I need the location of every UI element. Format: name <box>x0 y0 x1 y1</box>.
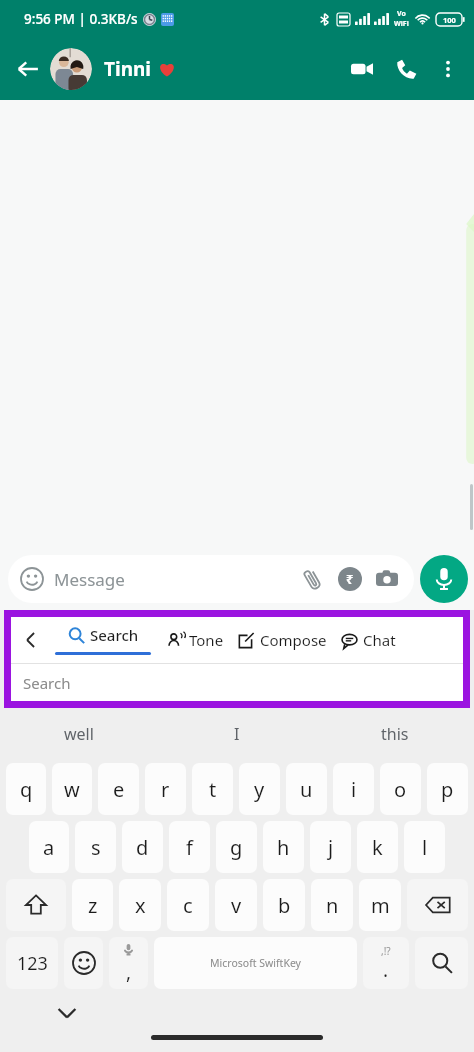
button[interactable]: c <box>167 879 209 931</box>
button[interactable]: t <box>192 763 233 815</box>
staticText: i <box>351 776 357 803</box>
button[interactable]: Microsoft SwiftKey <box>154 937 357 989</box>
staticText: r <box>161 776 170 803</box>
button[interactable]: e <box>98 763 139 815</box>
button[interactable]: well <box>0 708 158 760</box>
button[interactable]: l <box>404 821 445 873</box>
button[interactable]: Punctuation <box>363 937 409 989</box>
button[interactable]: Search <box>51 625 155 655</box>
staticText: q <box>20 776 33 803</box>
staticText: l <box>422 834 428 861</box>
button[interactable]: d <box>122 821 163 873</box>
staticText: n <box>326 892 339 919</box>
staticText: f <box>186 834 193 861</box>
button[interactable]: b <box>263 879 305 931</box>
button[interactable]: Emoji <box>64 937 103 989</box>
staticText: 9:56 PM | 0.3KB/s <box>24 10 138 28</box>
staticText: x <box>135 892 146 919</box>
button[interactable]: Message <box>8 555 414 603</box>
staticText: Tone <box>189 630 224 650</box>
button[interactable]: z <box>72 879 113 931</box>
button[interactable]: Back <box>8 49 48 89</box>
button[interactable]: f <box>169 821 210 873</box>
staticText: Search <box>23 673 71 693</box>
staticText: h <box>277 834 290 861</box>
button[interactable]: Attach <box>296 563 328 595</box>
staticText: s <box>91 834 101 861</box>
staticText: z <box>88 892 98 919</box>
button[interactable]: Tinni <box>50 48 176 90</box>
staticText: b <box>278 892 291 919</box>
button[interactable]: I <box>158 708 316 760</box>
staticText: . <box>383 957 389 983</box>
button[interactable]: m <box>359 879 401 931</box>
button[interactable]: Camera <box>372 564 402 594</box>
button[interactable]: Voice input or comma <box>109 937 148 989</box>
button[interactable]: h <box>263 821 304 873</box>
staticText: c <box>183 892 193 919</box>
staticText: ,!? <box>381 944 391 958</box>
staticText: WiFi <box>394 19 409 29</box>
button[interactable]: a <box>29 821 69 873</box>
button[interactable]: Tone <box>165 630 226 650</box>
staticText: Tinni <box>104 56 152 82</box>
staticText: v <box>231 892 242 919</box>
staticText: j <box>328 834 334 861</box>
button[interactable]: 123 <box>6 937 58 989</box>
button[interactable]: Compose <box>236 630 329 650</box>
staticText: Search <box>90 625 139 645</box>
button[interactable]: p <box>427 763 468 815</box>
button[interactable]: Payment <box>336 565 364 593</box>
staticText: d <box>136 834 149 861</box>
staticText: y <box>254 776 265 803</box>
staticText: u <box>300 776 313 803</box>
button[interactable]: o <box>380 763 421 815</box>
button[interactable]: Video call <box>340 47 384 91</box>
staticText: well <box>64 723 94 745</box>
button[interactable]: Search <box>11 664 463 701</box>
staticText: Vo <box>397 9 406 19</box>
button[interactable]: q <box>6 763 46 815</box>
staticText: , <box>126 959 132 985</box>
staticText: 100 <box>443 15 456 25</box>
staticText: t <box>209 776 217 803</box>
button[interactable]: Hide keyboard <box>52 998 82 1028</box>
button[interactable]: r <box>145 763 186 815</box>
button[interactable]: k <box>357 821 398 873</box>
staticText: e <box>113 776 125 803</box>
button[interactable]: s <box>75 821 116 873</box>
staticText: Compose <box>260 630 327 650</box>
staticText: k <box>372 834 383 861</box>
staticText: Message <box>54 568 125 591</box>
button[interactable]: More options <box>428 49 468 89</box>
button[interactable]: y <box>239 763 280 815</box>
button[interactable]: g <box>216 821 257 873</box>
button[interactable]: n <box>311 879 353 931</box>
staticText: p <box>441 776 454 803</box>
button[interactable]: Back <box>11 617 51 663</box>
button[interactable]: j <box>310 821 351 873</box>
staticText: m <box>371 892 390 919</box>
button[interactable]: x <box>119 879 161 931</box>
staticText: I <box>234 723 240 745</box>
button[interactable]: w <box>52 763 92 815</box>
staticText: a <box>43 834 55 861</box>
staticText: w <box>64 776 80 803</box>
staticText: ₹ <box>346 570 354 588</box>
button[interactable]: this <box>316 708 474 760</box>
staticText: this <box>381 723 409 745</box>
button[interactable]: Voice message <box>420 555 468 603</box>
staticText: Microsoft SwiftKey <box>210 956 301 970</box>
button[interactable]: u <box>286 763 327 815</box>
staticText: 123 <box>17 951 48 976</box>
staticText: o <box>394 776 407 803</box>
staticText: g <box>230 834 243 861</box>
button[interactable]: Chat <box>339 630 398 650</box>
button[interactable]: i <box>333 763 374 815</box>
button[interactable]: Shift <box>6 879 66 931</box>
button[interactable]: v <box>215 879 257 931</box>
staticText: Chat <box>363 630 396 650</box>
button[interactable]: Backspace <box>407 879 468 931</box>
button[interactable]: Voice call <box>384 47 428 91</box>
button[interactable]: Search <box>415 937 468 989</box>
